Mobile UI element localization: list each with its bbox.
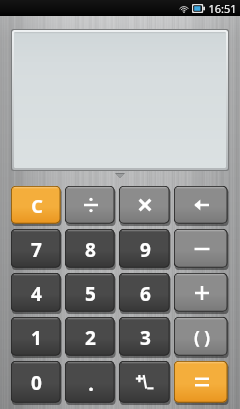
staticText: 2 xyxy=(85,325,96,351)
staticText: 3 xyxy=(140,325,151,351)
staticText: 16:51 xyxy=(208,1,237,16)
staticText: 1 xyxy=(31,325,42,351)
staticText: 9 xyxy=(140,237,151,263)
staticText: 6 xyxy=(140,281,151,307)
button[interactable]: Delete xyxy=(174,186,229,226)
button[interactable]: 0 xyxy=(11,361,62,405)
button[interactable]: 9 xyxy=(119,229,171,270)
button[interactable]: 4 xyxy=(11,273,62,314)
button[interactable]: 5 xyxy=(65,273,116,314)
button[interactable]: 1 xyxy=(11,317,62,358)
other: Show history xyxy=(115,173,125,178)
staticText: C xyxy=(31,194,43,219)
staticText: 8 xyxy=(85,237,96,263)
button[interactable]: . xyxy=(65,361,116,405)
button[interactable]: Plus minus xyxy=(119,361,171,405)
staticText: . xyxy=(88,370,94,397)
button[interactable]: 8 xyxy=(65,229,116,270)
staticText: 0 xyxy=(31,370,42,396)
button[interactable]: 2 xyxy=(65,317,116,358)
button[interactable]: 6 xyxy=(119,273,171,314)
staticText: ( ) xyxy=(194,326,210,349)
button[interactable]: Divide xyxy=(65,186,116,226)
button[interactable]: C xyxy=(11,186,62,226)
staticText: 5 xyxy=(85,281,96,307)
button[interactable]: Equals xyxy=(174,361,229,405)
staticText: 4 xyxy=(31,281,42,307)
button[interactable]: 3 xyxy=(119,317,171,358)
button[interactable]: Plus xyxy=(174,273,229,314)
button[interactable]: Minus xyxy=(174,229,229,270)
button[interactable]: Multiply xyxy=(119,186,171,226)
button[interactable]: 7 xyxy=(11,229,62,270)
staticText: 7 xyxy=(31,237,42,263)
button[interactable]: ( ) xyxy=(174,317,229,358)
